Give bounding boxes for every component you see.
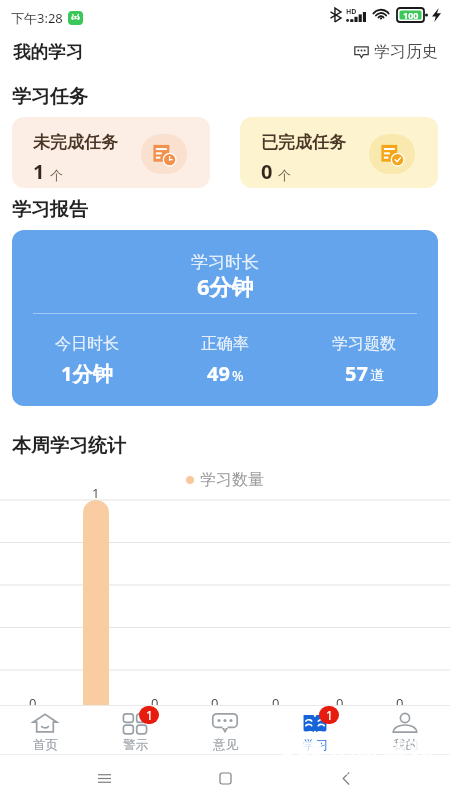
staticText: Rengwan Games	[331, 762, 426, 778]
staticText: 未完成任务	[33, 132, 118, 153]
staticText: 0	[29, 694, 37, 712]
button[interactable]: 已完成任务	[240, 117, 438, 188]
button[interactable]: 意见	[180, 706, 270, 754]
staticText: 我的	[393, 737, 418, 753]
staticText: 个	[278, 167, 291, 183]
staticText: 道	[370, 367, 384, 385]
staticText: 意见	[213, 737, 238, 753]
staticText: 49	[207, 360, 230, 387]
staticText: 0	[396, 694, 404, 712]
staticText: 学习	[303, 737, 328, 753]
staticText: 下午3:28	[11, 9, 63, 27]
button[interactable]: 1	[90, 706, 180, 754]
staticText: 1	[92, 484, 100, 502]
staticText: 今日时长	[55, 334, 119, 354]
staticText: 0	[261, 158, 273, 185]
staticText: 已完成任务	[261, 132, 346, 153]
button[interactable]: 1	[270, 706, 360, 754]
staticText: 1	[146, 707, 153, 723]
staticText: 学习报告	[12, 198, 88, 222]
staticText: 0	[272, 694, 280, 712]
staticText: 警示	[123, 737, 148, 753]
staticText: 学习时长	[191, 252, 259, 273]
button[interactable]: 未完成任务	[12, 117, 210, 188]
button[interactable]: 我的	[360, 706, 450, 754]
staticText: 学习题数	[332, 334, 396, 354]
staticText: 100	[403, 9, 419, 21]
button[interactable]: 学习历史	[354, 42, 438, 62]
button[interactable]: 首页	[0, 706, 90, 754]
staticText: %	[232, 366, 244, 385]
staticText: 1	[326, 707, 333, 723]
staticText: 本周学习统计	[12, 434, 126, 458]
staticText: 个	[50, 167, 63, 183]
staticText: 1分钟	[61, 360, 113, 387]
staticText: 仍玩游戏	[329, 735, 433, 768]
staticText: 学习任务	[12, 85, 88, 109]
button[interactable]: Back	[329, 761, 363, 795]
staticText: 6分钟	[197, 271, 254, 301]
staticText: 首页	[33, 737, 58, 753]
button[interactable]: Menu	[87, 761, 121, 795]
staticText: 0	[151, 694, 159, 712]
button[interactable]: Recents	[208, 761, 242, 795]
staticText: 1	[33, 158, 45, 185]
staticText: 学习历史	[374, 42, 438, 62]
staticText: 0	[211, 694, 219, 712]
staticText: HD	[346, 7, 357, 17]
staticText: 正确率	[201, 334, 249, 354]
staticText: 学习数量	[200, 470, 264, 490]
staticText: 我的学习	[13, 41, 83, 63]
staticText: 0	[336, 694, 344, 712]
staticText: 57	[345, 360, 368, 387]
